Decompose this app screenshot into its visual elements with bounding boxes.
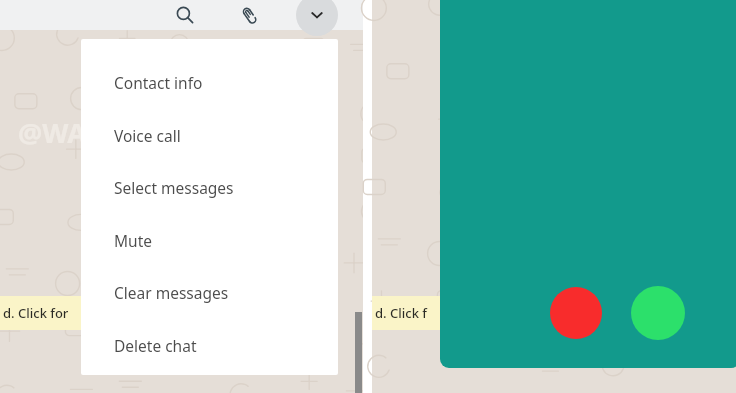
staticText: Voice call [114, 125, 181, 146]
staticText: Contact info [114, 72, 203, 93]
button[interactable]: Accept call [631, 286, 685, 340]
button[interactable]: Select messages [81, 161, 338, 213]
staticText: d. Click f [375, 304, 427, 322]
button[interactable]: Contact info [81, 56, 338, 108]
button[interactable]: Mute [81, 214, 338, 266]
staticText: Delete chat [114, 335, 197, 356]
button[interactable]: Attach [234, 0, 264, 30]
button[interactable]: Menu [296, 0, 338, 36]
button[interactable]: Search [170, 0, 200, 30]
staticText: d. Click for [3, 304, 69, 322]
button[interactable]: Decline call [550, 287, 602, 339]
staticText: @WABetaInfo [18, 114, 204, 151]
button[interactable]: Delete chat [81, 319, 338, 371]
staticText: Select messages [114, 177, 234, 198]
button[interactable]: Clear messages [81, 266, 338, 318]
staticText: Clear messages [114, 282, 229, 303]
button[interactable]: Voice call [81, 109, 338, 161]
staticText: Mute [114, 230, 152, 251]
